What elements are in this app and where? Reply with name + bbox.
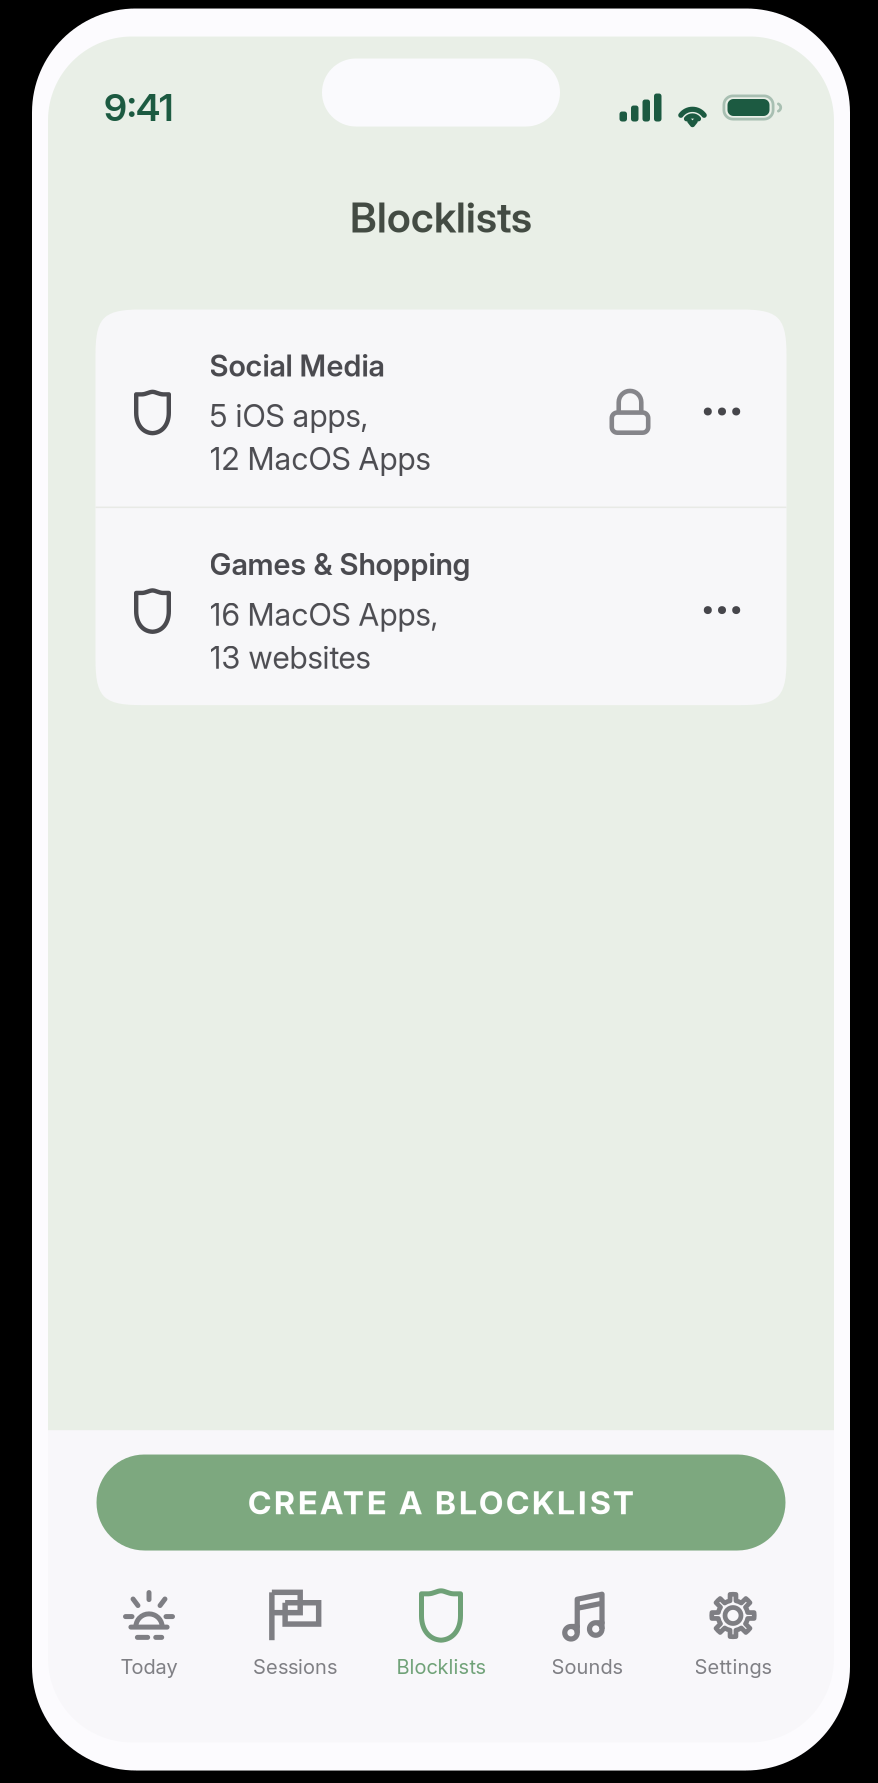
button[interactable]: Sounds xyxy=(514,1588,660,1680)
button[interactable]: Sessions xyxy=(222,1588,368,1680)
staticText: 16 MacOS Apps, xyxy=(209,596,438,633)
button[interactable]: CREATE A BLOCKLIST xyxy=(96,1454,785,1550)
staticText: Settings xyxy=(694,1654,771,1679)
staticText: 12 MacOS Apps xyxy=(209,440,430,477)
button[interactable]: Today xyxy=(76,1588,222,1680)
button[interactable]: Blocklists xyxy=(368,1588,514,1680)
button[interactable]: Settings xyxy=(660,1588,806,1680)
staticText: Sessions xyxy=(253,1654,337,1679)
staticText: Social Media xyxy=(209,348,384,383)
staticText: 5 iOS apps, xyxy=(209,397,368,434)
button[interactable]: Games & Shopping xyxy=(95,508,786,705)
staticText: 13 websites xyxy=(209,639,370,676)
staticText: CREATE A BLOCKLIST xyxy=(248,1483,634,1522)
staticText: 9:41 xyxy=(104,85,174,130)
staticText: Sounds xyxy=(551,1654,622,1679)
staticText: Games & Shopping xyxy=(209,547,470,582)
staticText: Blocklists xyxy=(396,1654,485,1679)
staticText: Blocklists xyxy=(350,192,532,242)
staticText: Today xyxy=(120,1654,177,1679)
button[interactable]: Social Media xyxy=(95,309,786,506)
